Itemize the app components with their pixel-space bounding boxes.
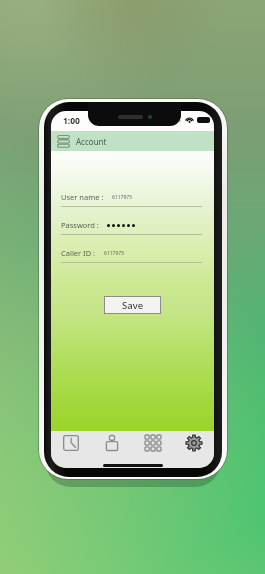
button[interactable]: Menu <box>51 131 214 151</box>
staticText: Password : <box>61 220 99 230</box>
staticText: Caller ID : <box>61 248 96 258</box>
staticText: Save <box>122 299 144 312</box>
button[interactable]: Recent calls <box>51 431 91 462</box>
staticText: 1:00 <box>63 115 80 127</box>
button[interactable]: Settings <box>173 431 214 462</box>
button[interactable]: Save <box>104 296 161 314</box>
button[interactable]: Keypad <box>132 431 173 462</box>
staticText: Account <box>76 136 107 147</box>
staticText: User name : <box>61 192 104 202</box>
button[interactable]: Contacts <box>91 431 132 462</box>
staticText: 6117975 <box>112 194 133 201</box>
other: Menu <box>57 135 70 148</box>
staticText: 6117975 <box>104 250 125 257</box>
